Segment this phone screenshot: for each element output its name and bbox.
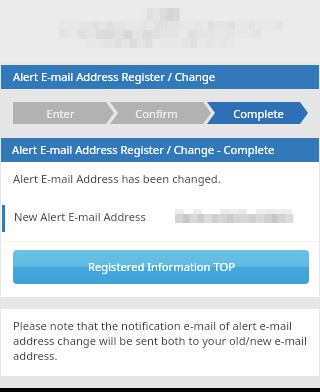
button[interactable]: Confirm bbox=[108, 102, 204, 124]
button[interactable]: Complete bbox=[208, 102, 308, 124]
staticText: Alert E-mail Address has been changed. bbox=[13, 171, 221, 186]
staticText: Confirm bbox=[135, 106, 178, 121]
staticText: Enter bbox=[46, 106, 75, 121]
staticText: Complete bbox=[233, 106, 284, 121]
staticText: Alert E-mail Address Register / Change -… bbox=[12, 142, 275, 157]
button[interactable]: Registered Information TOP bbox=[13, 250, 309, 284]
staticText: Registered Information TOP bbox=[88, 259, 235, 274]
staticText: New Alert E-mail Address bbox=[14, 209, 146, 224]
staticText: Please note that the notification e-mail… bbox=[13, 318, 309, 363]
staticText: Alert E-mail Address Register / Change bbox=[13, 69, 216, 84]
button[interactable]: Enter bbox=[14, 102, 106, 124]
